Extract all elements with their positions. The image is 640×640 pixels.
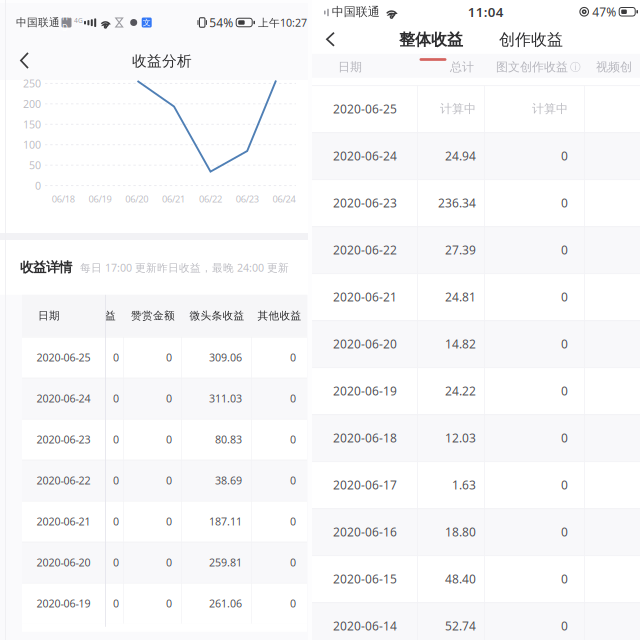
staticText: 24.22 xyxy=(445,383,476,399)
staticText: 2020-06-16 xyxy=(333,524,397,540)
staticText: 微头条收益 xyxy=(189,309,244,322)
staticText: 50 xyxy=(29,158,41,172)
button[interactable]: 整体收益 xyxy=(399,26,463,54)
staticText: 2020-06-25 xyxy=(36,350,90,364)
button[interactable]: Back xyxy=(312,26,347,54)
staticText: 06/21 xyxy=(162,193,185,205)
staticText: 中国联通 xyxy=(332,4,380,19)
staticText: 0 xyxy=(561,289,568,305)
staticText: 图文创作收益 xyxy=(496,60,568,74)
staticText: 12.03 xyxy=(445,430,476,446)
staticText: 0 xyxy=(561,430,568,446)
staticText: 0 xyxy=(166,514,172,528)
staticText: 2020-06-21 xyxy=(333,289,397,305)
staticText: 2020-06-14 xyxy=(333,618,397,634)
staticText: 38.69 xyxy=(215,473,242,487)
staticText: 2020-06-20 xyxy=(333,336,397,352)
staticText: 0 xyxy=(166,473,172,487)
staticText: 2020-06-17 xyxy=(333,477,397,493)
staticText: 0 xyxy=(166,432,172,446)
staticText: 计算中 xyxy=(532,101,568,116)
staticText: 24.94 xyxy=(445,148,476,164)
staticText: 0 xyxy=(113,596,119,610)
staticText: 06/18 xyxy=(52,193,75,205)
staticText: 总计 xyxy=(450,60,474,74)
staticText: 24.81 xyxy=(445,289,476,305)
staticText: 0 xyxy=(561,383,568,399)
staticText: 益 xyxy=(105,309,116,322)
staticText: 2020-06-24 xyxy=(36,391,90,405)
staticText: 2020-06-20 xyxy=(36,555,90,569)
staticText: 0 xyxy=(290,555,296,569)
staticText: 上午10:27 xyxy=(258,15,307,30)
staticText: 0 xyxy=(113,473,119,487)
staticText: 0 xyxy=(561,618,568,634)
staticText: 创作收益 xyxy=(499,30,563,50)
staticText: 视频创 xyxy=(596,60,632,74)
staticText: 187.11 xyxy=(209,514,242,528)
staticText: 2020-06-19 xyxy=(333,383,397,399)
staticText: 48.40 xyxy=(445,571,476,587)
staticText: ⓘ xyxy=(570,61,581,74)
staticText: 0 xyxy=(561,195,568,211)
button[interactable]: Back xyxy=(0,45,43,77)
staticText: 2020-06-23 xyxy=(36,432,90,446)
staticText: 236.34 xyxy=(438,195,476,211)
staticText: 4G xyxy=(74,16,83,25)
staticText: 0 xyxy=(113,391,119,405)
staticText: 06/19 xyxy=(88,193,111,205)
staticText: 0 xyxy=(290,596,296,610)
staticText: 0 xyxy=(113,350,119,364)
staticText: 日期 xyxy=(338,60,362,74)
staticText: 0 xyxy=(561,477,568,493)
staticText: 0 xyxy=(290,391,296,405)
staticText: 261.06 xyxy=(209,596,242,610)
staticText: 06/24 xyxy=(272,193,295,205)
staticText: 11:04 xyxy=(468,3,504,21)
staticText: 0 xyxy=(113,555,119,569)
staticText: 52.74 xyxy=(445,618,476,634)
staticText: 赞赏金额 xyxy=(131,309,175,322)
staticText: 其他收益 xyxy=(257,309,301,322)
staticText: 2020-06-22 xyxy=(333,242,397,258)
staticText: 0 xyxy=(290,432,296,446)
staticText: 0 xyxy=(561,148,568,164)
staticText: 0 xyxy=(290,350,296,364)
staticText: 06/20 xyxy=(125,193,148,205)
staticText: 2020-06-18 xyxy=(333,430,397,446)
staticText: 日期 xyxy=(38,309,60,322)
staticText: 2020-06-25 xyxy=(333,101,397,117)
staticText: 2020-06-15 xyxy=(333,571,397,587)
staticText: 1.63 xyxy=(452,477,476,493)
staticText: 文 xyxy=(143,18,151,27)
staticText: 150 xyxy=(23,117,41,131)
staticText: 收益详情 xyxy=(20,259,72,276)
staticText: 0 xyxy=(561,571,568,587)
button[interactable]: 创作收益 xyxy=(499,26,563,54)
staticText: 250 xyxy=(23,76,41,90)
staticText: 2020-06-24 xyxy=(333,148,397,164)
staticText: 309.06 xyxy=(209,350,242,364)
staticText: 0 xyxy=(561,242,568,258)
staticText: 0 xyxy=(166,596,172,610)
staticText: 200 xyxy=(23,97,41,111)
staticText: 2020-06-21 xyxy=(36,514,90,528)
staticText: 整体收益 xyxy=(399,30,463,50)
staticText: 259.81 xyxy=(209,555,242,569)
staticText: 中国联通 xyxy=(16,16,60,29)
staticText: 14.82 xyxy=(445,336,476,352)
staticText: 0 xyxy=(290,473,296,487)
staticText: 0 xyxy=(166,391,172,405)
staticText: 06/23 xyxy=(236,193,259,205)
staticText: 18.80 xyxy=(445,524,476,540)
staticText: 100 xyxy=(23,138,41,152)
staticText: 0 xyxy=(113,514,119,528)
staticText: 0 xyxy=(166,350,172,364)
staticText: 0 xyxy=(35,178,41,193)
staticText: 2020-06-23 xyxy=(333,195,397,211)
staticText: 311.03 xyxy=(209,391,242,405)
staticText: 06/22 xyxy=(199,193,222,205)
staticText: 0 xyxy=(290,514,296,528)
staticText: 每日 17:00 更新昨日收益，最晚 24:00 更新 xyxy=(80,260,289,275)
staticText: 计算中 xyxy=(440,101,476,116)
